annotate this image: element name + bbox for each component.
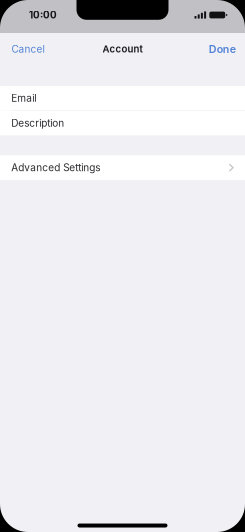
staticText: Advanced Settings [11, 162, 100, 174]
button[interactable]: Description [0, 111, 245, 135]
button[interactable]: Cancel [0, 37, 53, 61]
button[interactable]: Advanced Settings [0, 155, 245, 180]
staticText: Email [11, 92, 36, 104]
staticText: Description [11, 117, 64, 129]
staticText: 10:00 [29, 9, 57, 21]
button[interactable]: Email [0, 86, 245, 110]
staticText: Account [102, 43, 142, 55]
staticText: Cancel [12, 43, 45, 55]
staticText: Done [209, 42, 236, 55]
button[interactable]: Done [201, 36, 245, 61]
